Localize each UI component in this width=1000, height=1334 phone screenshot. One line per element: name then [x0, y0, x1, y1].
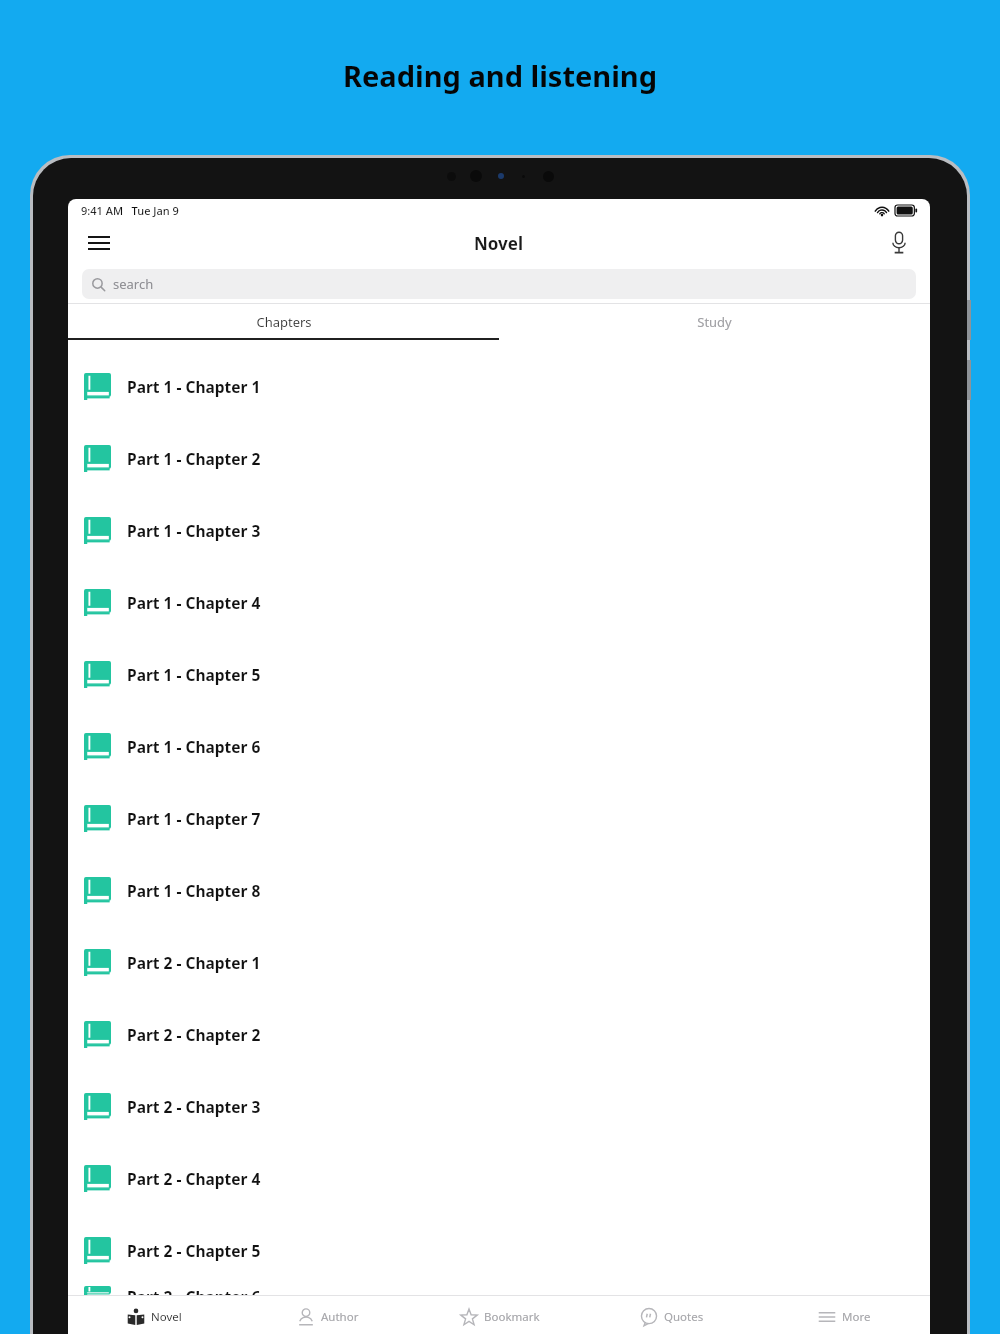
staticText: Quotes — [664, 1309, 704, 1325]
button[interactable]: Part 1 - Chapter 4 — [68, 566, 930, 638]
button[interactable]: Chapters — [68, 304, 499, 340]
staticText: Part 1 - Chapter 6 — [127, 736, 261, 757]
staticText: 9:41 AM Tue Jan 9 — [81, 203, 179, 218]
button[interactable]: Part 2 - Chapter 3 — [68, 1070, 930, 1142]
staticText: Part 1 - Chapter 2 — [127, 448, 261, 469]
staticText: Part 1 - Chapter 4 — [127, 592, 261, 613]
button[interactable]: Bookmark — [414, 1296, 586, 1334]
staticText: Part 2 - Chapter 3 — [127, 1096, 261, 1117]
button[interactable]: Part 1 - Chapter 2 — [68, 422, 930, 494]
staticText: Part 2 - Chapter 4 — [127, 1168, 261, 1189]
staticText: search — [113, 275, 154, 293]
staticText: Reading and listening — [343, 56, 657, 95]
button[interactable]: Part 1 - Chapter 8 — [68, 854, 930, 926]
staticText: Chapters — [256, 313, 312, 331]
staticText: Part 1 - Chapter 8 — [127, 880, 261, 901]
staticText: Study — [697, 313, 732, 331]
button[interactable]: Part 1 - Chapter 3 — [68, 494, 930, 566]
staticText: Novel — [151, 1309, 182, 1325]
button[interactable]: search — [82, 269, 916, 299]
button[interactable]: Quotes — [586, 1296, 758, 1334]
button[interactable]: Part 2 - Chapter 2 — [68, 998, 930, 1070]
button[interactable]: Part 1 - Chapter 7 — [68, 782, 930, 854]
button[interactable]: Author — [241, 1296, 414, 1334]
staticText: Part 1 - Chapter 1 — [127, 376, 261, 397]
button[interactable]: Part 2 - Chapter 5 — [68, 1214, 930, 1286]
staticText: Part 2 - Chapter 5 — [127, 1240, 261, 1261]
button[interactable]: Part 2 - Chapter 4 — [68, 1142, 930, 1214]
button[interactable]: Study — [499, 304, 930, 340]
staticText: Novel — [474, 232, 524, 255]
staticText: Part 2 - Chapter 1 — [127, 952, 261, 973]
staticText: Part 1 - Chapter 3 — [127, 520, 261, 541]
staticText: Part 1 - Chapter 7 — [127, 808, 261, 829]
staticText: Part 2 - Chapter 6 — [127, 1286, 261, 1295]
staticText: Author — [321, 1309, 359, 1325]
button[interactable]: Part 2 - Chapter 1 — [68, 926, 930, 998]
staticText: Bookmark — [484, 1309, 540, 1325]
button[interactable]: Novel — [68, 1296, 241, 1334]
button[interactable]: Voice search — [882, 226, 916, 260]
button[interactable]: Part 1 - Chapter 6 — [68, 710, 930, 782]
staticText: Part 1 - Chapter 5 — [127, 664, 261, 685]
button[interactable]: Part 2 - Chapter 6 — [68, 1286, 930, 1295]
staticText: More — [842, 1309, 871, 1325]
button[interactable]: Menu — [82, 226, 116, 260]
staticText: Part 2 - Chapter 2 — [127, 1024, 261, 1045]
button[interactable]: Part 1 - Chapter 5 — [68, 638, 930, 710]
button[interactable]: More — [758, 1296, 930, 1334]
button[interactable]: Part 1 - Chapter 1 — [68, 350, 930, 422]
